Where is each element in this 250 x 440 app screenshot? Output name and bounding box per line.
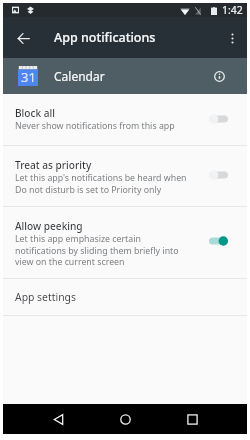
button[interactable]: Allow peeking: [3, 207, 247, 278]
button[interactable]: More options: [222, 28, 242, 48]
button[interactable]: Block all off: [207, 109, 229, 129]
button[interactable]: Treat as priority off: [207, 165, 229, 185]
staticText: Allow peeking: [15, 219, 83, 233]
button[interactable]: Home: [113, 407, 137, 431]
button[interactable]: Back: [46, 407, 70, 431]
button[interactable]: Recent apps: [180, 407, 204, 431]
button[interactable]: App info: [210, 67, 228, 85]
button[interactable]: Treat as priority: [3, 146, 247, 206]
staticText: Never show notifications from this app: [15, 120, 175, 132]
button[interactable]: Allow peeking on: [207, 231, 229, 251]
staticText: Calendar: [54, 68, 105, 84]
staticText: 1:42: [222, 3, 243, 17]
staticText: Let this app emphasize certain notificat…: [15, 233, 179, 267]
button[interactable]: Navigate up: [13, 28, 33, 48]
staticText: Treat as priority: [15, 158, 92, 172]
button[interactable]: 31: [3, 58, 247, 94]
button[interactable]: Block all: [3, 94, 247, 145]
staticText: Block all: [15, 106, 55, 120]
staticText: App settings: [15, 290, 76, 304]
staticText: Let this app's notifications be heard wh…: [15, 172, 187, 195]
button[interactable]: App settings: [3, 279, 247, 315]
staticText: 31: [21, 68, 36, 86]
staticText: App notifications: [54, 29, 156, 46]
